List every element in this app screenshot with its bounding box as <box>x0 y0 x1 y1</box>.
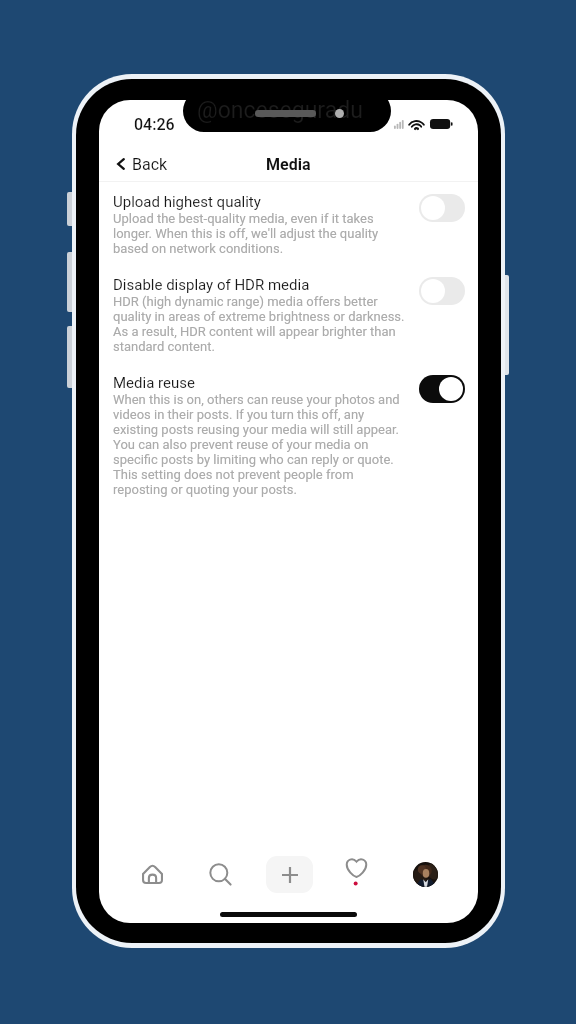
staticText: Upload the best-quality media, even if i… <box>113 211 405 256</box>
staticText: @onceseguradu <box>197 100 363 124</box>
button[interactable]: Media reuse <box>99 363 478 506</box>
staticText: Media <box>266 155 311 174</box>
staticText: When this is on, others can reuse your p… <box>113 392 405 497</box>
button[interactable]: Search <box>198 852 242 896</box>
staticText: Back <box>132 155 168 174</box>
button[interactable]: Disable display of HDR media <box>99 265 478 363</box>
button[interactable]: Toggle on <box>419 375 465 403</box>
staticText: HDR (high dynamic range) media offers be… <box>113 294 405 354</box>
button[interactable]: Profile <box>403 852 447 896</box>
staticText: Disable display of HDR media <box>113 276 310 294</box>
button[interactable]: Home <box>130 852 174 896</box>
button[interactable]: Back <box>99 150 173 179</box>
button[interactable]: Toggle off <box>419 194 465 222</box>
button[interactable]: Notifications <box>334 852 378 896</box>
staticText: Upload highest quality <box>113 193 261 211</box>
button[interactable]: Create <box>266 856 313 893</box>
button[interactable]: Toggle off <box>419 277 465 305</box>
staticText: 04:26 <box>134 115 175 134</box>
staticText: Media reuse <box>113 374 195 392</box>
button[interactable]: Upload highest quality <box>99 182 478 265</box>
